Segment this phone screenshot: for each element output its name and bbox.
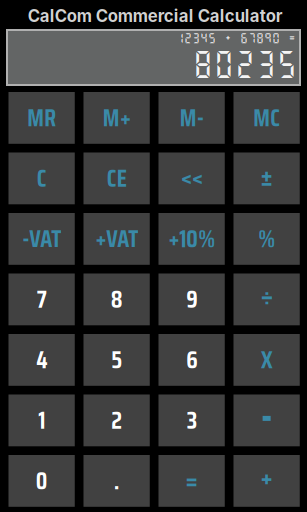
- staticText: C: [37, 159, 47, 197]
- staticText: =: [185, 459, 198, 501]
- staticText: MR: [27, 99, 56, 137]
- staticText: +: [260, 456, 273, 498]
- button[interactable]: C: [8, 152, 75, 204]
- staticText: 1: [38, 401, 45, 439]
- button[interactable]: 1: [8, 394, 75, 446]
- button[interactable]: <<: [158, 152, 225, 204]
- staticText: 80235: [192, 47, 297, 80]
- button[interactable]: 5: [83, 334, 150, 386]
- button[interactable]: M-: [158, 92, 225, 144]
- button[interactable]: 7: [8, 273, 75, 325]
- staticText: 7: [37, 280, 47, 318]
- button[interactable]: .: [83, 455, 150, 507]
- staticText: +VAT: [95, 220, 138, 258]
- button[interactable]: 2: [83, 394, 150, 446]
- button[interactable]: X: [233, 334, 300, 386]
- button[interactable]: MR: [8, 92, 75, 144]
- button[interactable]: MC: [233, 92, 300, 144]
- button[interactable]: [233, 394, 300, 446]
- staticText: ÷: [260, 273, 273, 317]
- staticText: M-: [180, 99, 204, 137]
- staticText: +10%: [168, 220, 215, 258]
- staticText: 12345 + 67890 =: [176, 31, 296, 44]
- staticText: 6: [186, 341, 197, 379]
- button[interactable]: ÷: [233, 273, 300, 325]
- button[interactable]: CE: [83, 152, 150, 204]
- staticText: 4: [36, 341, 47, 379]
- staticText: %: [258, 220, 275, 258]
- button[interactable]: ±: [233, 152, 300, 204]
- button[interactable]: 4: [8, 334, 75, 386]
- staticText: -VAT: [22, 220, 61, 258]
- staticText: CE: [107, 159, 127, 197]
- button[interactable]: 0: [8, 455, 75, 507]
- staticText: <<: [181, 158, 203, 196]
- button[interactable]: +VAT: [83, 213, 150, 265]
- button[interactable]: %: [233, 213, 300, 265]
- staticText: ±: [260, 156, 273, 198]
- button[interactable]: 8: [83, 273, 150, 325]
- staticText: 0: [36, 462, 48, 500]
- button[interactable]: +10%: [158, 213, 225, 265]
- staticText: .: [114, 462, 120, 500]
- button[interactable]: 6: [158, 334, 225, 386]
- button[interactable]: 9: [158, 273, 225, 325]
- staticText: MC: [253, 99, 280, 137]
- staticText: M+: [103, 99, 131, 137]
- staticText: 8: [111, 280, 123, 318]
- button[interactable]: +: [233, 455, 300, 507]
- button[interactable]: -VAT: [8, 213, 75, 265]
- button[interactable]: 3: [158, 394, 225, 446]
- staticText: 5: [111, 341, 122, 379]
- button[interactable]: =: [158, 455, 225, 507]
- staticText: 3: [187, 401, 197, 439]
- button[interactable]: M+: [83, 92, 150, 144]
- staticText: 9: [186, 280, 197, 318]
- staticText: CalCom Commercial Calculator: [28, 6, 283, 26]
- staticText: X: [261, 341, 273, 379]
- staticText: 2: [111, 401, 122, 439]
